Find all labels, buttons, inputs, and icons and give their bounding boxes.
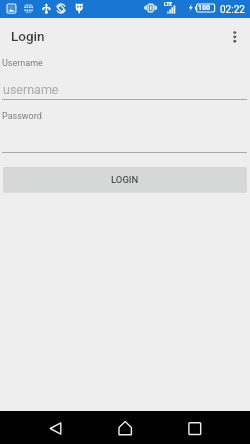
button[interactable]: More options	[222, 18, 250, 55]
button[interactable]: LOGIN	[3, 167, 247, 192]
button[interactable]: Back	[41, 411, 70, 444]
staticText: 100	[198, 4, 211, 12]
staticText: Username	[2, 58, 43, 69]
staticText: Password	[2, 111, 42, 122]
staticText: username	[3, 82, 59, 97]
staticText: LTE	[164, 1, 173, 7]
button[interactable]: Recent apps	[180, 411, 209, 444]
staticText: Login	[11, 28, 45, 44]
staticText: LOGIN	[111, 174, 139, 185]
staticText: 02:22	[220, 4, 245, 16]
button[interactable]: Home	[110, 411, 140, 444]
